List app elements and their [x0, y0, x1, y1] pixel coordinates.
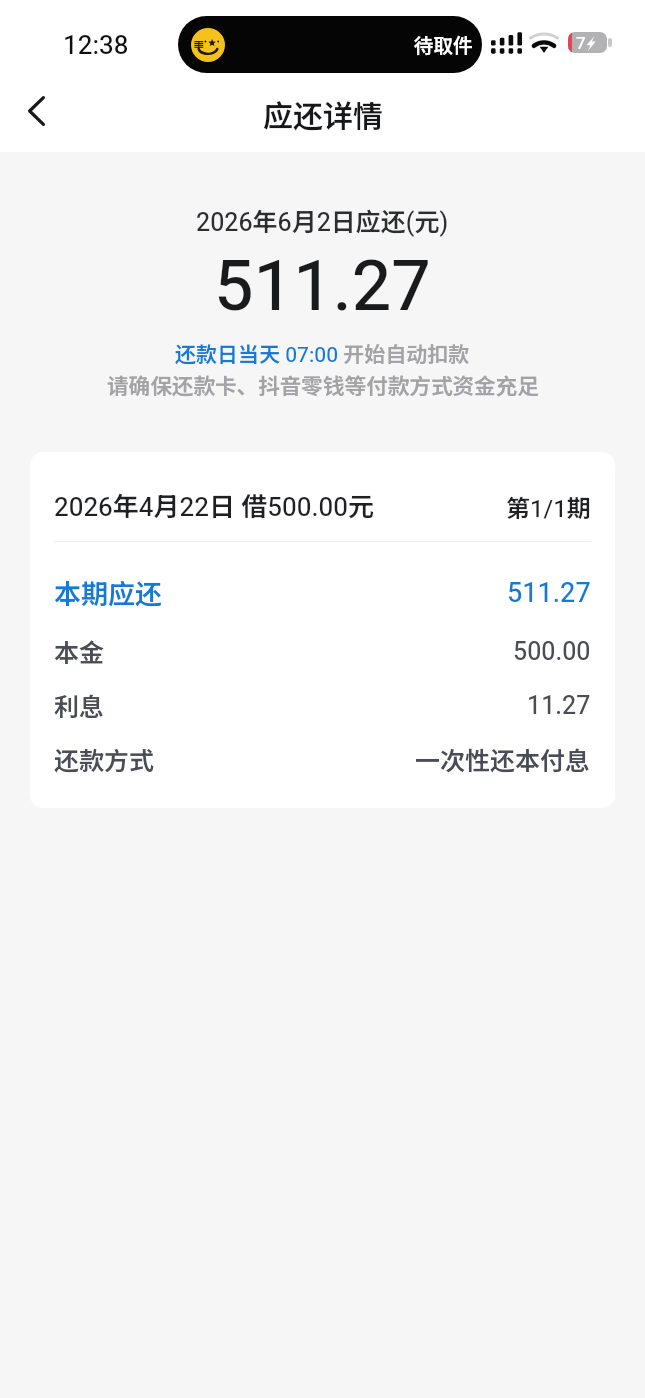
button[interactable]: 待取件	[178, 16, 482, 73]
staticText: 7	[576, 33, 586, 53]
button[interactable]: 2026年4月22日 借500.00元	[30, 486, 615, 524]
staticText: 利息	[54, 687, 105, 723]
button[interactable]: 利息	[30, 687, 615, 723]
staticText: 12:38	[63, 30, 129, 60]
button[interactable]: Back	[0, 82, 72, 152]
staticText: 500.00	[513, 637, 591, 666]
button[interactable]: 本期应还	[30, 573, 615, 612]
button[interactable]: 本金	[30, 633, 615, 669]
staticText: 511.27	[507, 577, 591, 609]
button[interactable]: 还款方式	[30, 741, 615, 777]
staticText: 11.27	[527, 691, 591, 720]
staticText: 511.27	[214, 245, 431, 327]
staticText: 2026年4月22日 借500.00元	[54, 486, 374, 524]
staticText: 本期应还	[54, 573, 162, 612]
staticText: 第1/1期	[506, 489, 591, 524]
staticText: 应还详情	[263, 92, 383, 135]
staticText: 还款方式	[54, 741, 155, 777]
staticText: 还款日当天 07:00 开始自动扣款	[175, 338, 470, 368]
staticText: 2026年6月2日应还(元)	[196, 202, 449, 238]
staticText: 请确保还款卡、抖音零钱等付款方式资金充足	[107, 369, 539, 400]
staticText: 本金	[54, 633, 105, 669]
staticText: 待取件	[414, 30, 473, 58]
button[interactable]: 2026年4月22日 借500.00元	[30, 452, 615, 808]
staticText: 一次性还本付息	[415, 741, 591, 777]
